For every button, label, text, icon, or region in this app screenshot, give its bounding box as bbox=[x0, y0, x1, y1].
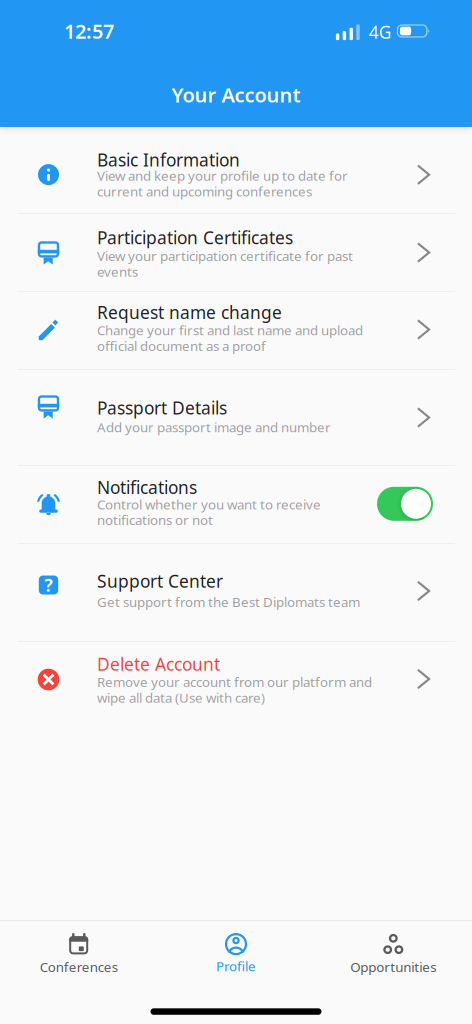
staticText: Remove your account from our platform an… bbox=[97, 673, 372, 706]
staticText: Notifications bbox=[97, 476, 197, 499]
staticText: View your participation certificate for … bbox=[97, 247, 353, 280]
button[interactable]: Notifications bbox=[377, 487, 433, 521]
staticText: View and keep your profile up to date fo… bbox=[97, 167, 348, 200]
button[interactable]: Opportunities bbox=[315, 933, 472, 976]
staticText: Get support from the Best Diplomats team bbox=[97, 593, 360, 611]
button[interactable]: ? bbox=[0, 544, 472, 641]
staticText: Request name change bbox=[97, 301, 282, 324]
staticText: 12:57 bbox=[64, 18, 114, 44]
staticText: Delete Account bbox=[97, 653, 220, 676]
button[interactable]: Notifications bbox=[0, 466, 472, 543]
staticText: Support Center bbox=[97, 570, 223, 593]
staticText: Passport Details bbox=[97, 396, 227, 419]
button[interactable]: Participation Certificates bbox=[0, 214, 472, 291]
staticText: Change your first and last name and uplo… bbox=[97, 321, 363, 355]
staticText: Your Account bbox=[171, 81, 300, 108]
staticText: Basic Information bbox=[97, 148, 240, 171]
staticText: Conferences bbox=[40, 958, 118, 976]
button[interactable]: Profile bbox=[157, 933, 315, 975]
staticText: Add your passport image and number bbox=[97, 418, 331, 436]
staticText: 4G bbox=[369, 20, 392, 43]
staticText: Profile bbox=[216, 957, 256, 975]
staticText: ? bbox=[44, 573, 52, 596]
button[interactable]: Conferences bbox=[0, 933, 157, 976]
staticText: Opportunities bbox=[350, 958, 436, 976]
button[interactable]: Request name change bbox=[0, 292, 472, 369]
button[interactable]: Delete Account bbox=[0, 642, 472, 719]
button[interactable]: Passport Details bbox=[0, 370, 472, 465]
staticText: Participation Certificates bbox=[97, 226, 293, 249]
button[interactable]: Basic Information bbox=[0, 127, 472, 213]
staticText: Control whether you want to receive noti… bbox=[97, 495, 321, 529]
